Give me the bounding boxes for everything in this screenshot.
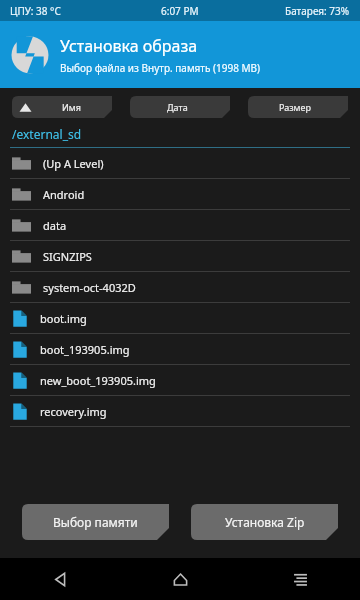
button[interactable]: Home xyxy=(120,558,240,600)
staticText: new_boot_193905.img xyxy=(40,373,156,388)
staticText: Android xyxy=(43,187,85,202)
staticText: data xyxy=(43,218,67,233)
button[interactable]: Android xyxy=(0,179,360,210)
staticText: boot_193905.img xyxy=(40,342,130,357)
staticText: ЦПУ: 38 °C xyxy=(10,4,61,18)
button[interactable]: data xyxy=(0,210,360,241)
staticText: Имя xyxy=(62,101,81,113)
button[interactable]: system-oct-4032D xyxy=(0,272,360,303)
staticText: Выбор файла из Внутр. память (1998 MB) xyxy=(60,61,261,75)
staticText: Установка образа xyxy=(60,35,198,57)
staticText: (Up A Level) xyxy=(43,156,104,171)
staticText: boot.img xyxy=(40,311,87,326)
button[interactable]: Размер xyxy=(248,96,348,118)
button[interactable]: Установка Zip xyxy=(191,504,338,540)
button[interactable]: Back xyxy=(0,558,120,600)
button[interactable]: recovery.img xyxy=(0,396,360,427)
button[interactable]: Recent apps xyxy=(240,558,360,600)
staticText: Размер xyxy=(279,101,311,113)
staticText: 6:07 PM xyxy=(161,4,199,18)
button[interactable]: Имя xyxy=(12,96,112,118)
staticText: Дата xyxy=(167,101,188,113)
staticText: Выбор памяти xyxy=(53,514,138,530)
button[interactable]: new_boot_193905.img xyxy=(0,365,360,396)
staticText: Установка Zip xyxy=(225,514,305,530)
staticText: system-oct-4032D xyxy=(43,280,136,295)
button[interactable]: boot_193905.img xyxy=(0,334,360,365)
button[interactable]: SIGNZIPS xyxy=(0,241,360,272)
button[interactable]: Дата xyxy=(130,96,230,118)
button[interactable]: Выбор памяти xyxy=(22,504,169,540)
staticText: /external_sd xyxy=(12,126,82,142)
button[interactable]: boot.img xyxy=(0,303,360,334)
button[interactable]: (Up A Level) xyxy=(0,148,360,179)
staticText: recovery.img xyxy=(40,404,107,419)
staticText: Батарея: 73% xyxy=(285,4,350,18)
staticText: SIGNZIPS xyxy=(43,249,92,264)
